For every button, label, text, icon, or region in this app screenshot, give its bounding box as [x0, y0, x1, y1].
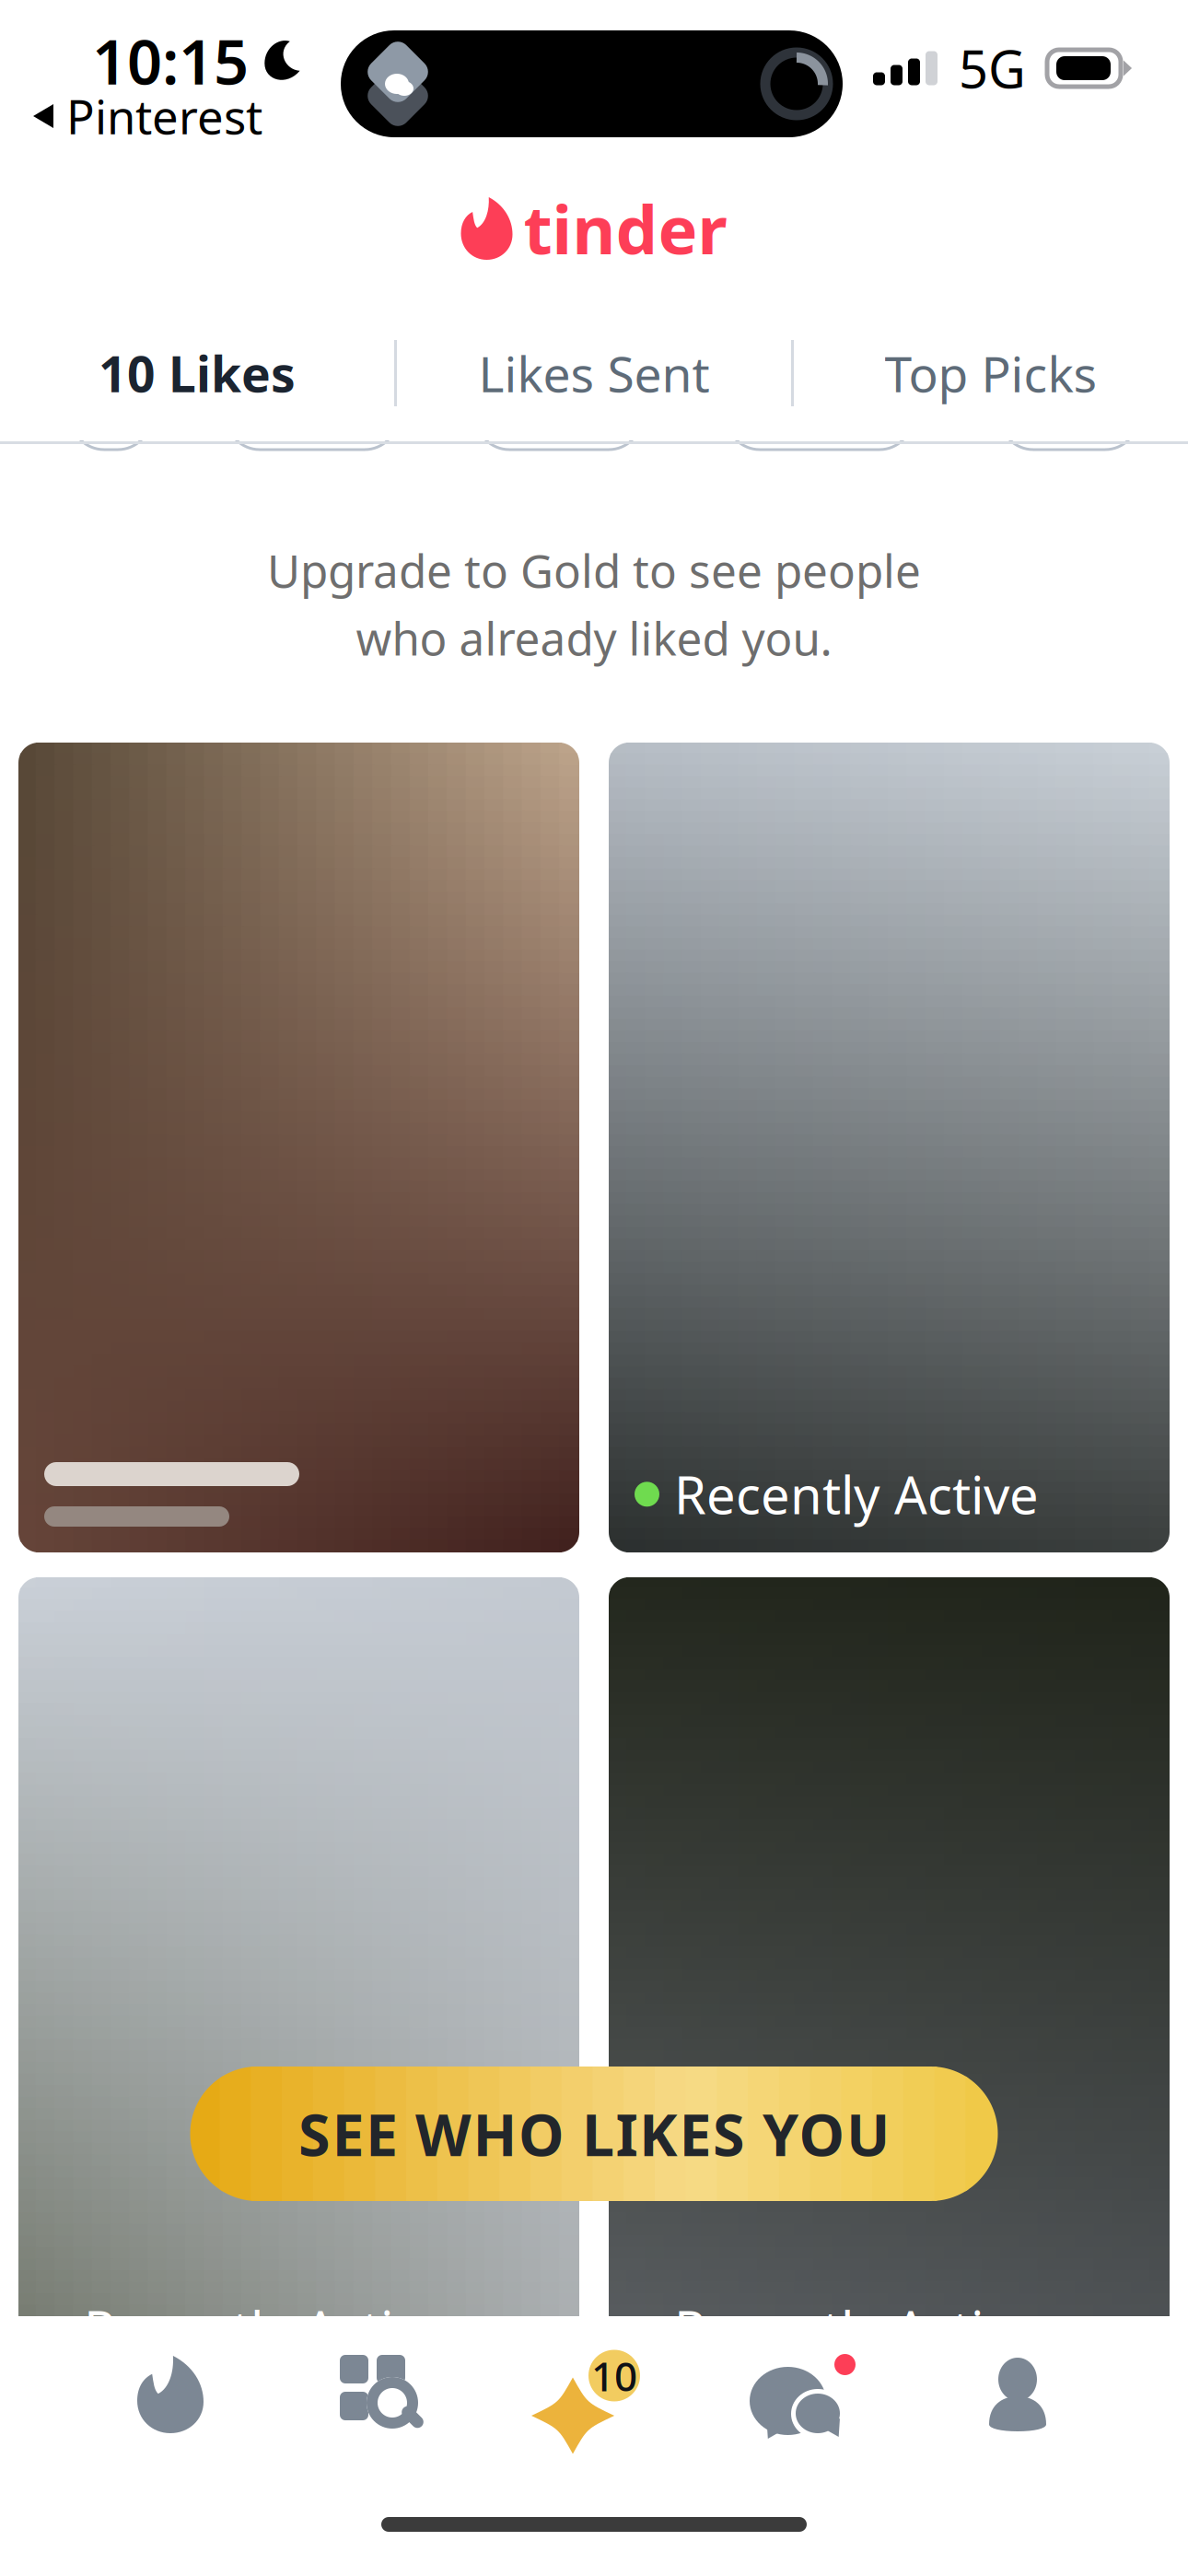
- button[interactable]: Messages: [700, 2316, 912, 2473]
- button[interactable]: Explore: [276, 2316, 488, 2473]
- staticText: 10: [591, 2349, 637, 2403]
- button[interactable]: 10 Likes: [0, 309, 394, 438]
- button[interactable]: Profile: [912, 2316, 1124, 2473]
- staticText: tinder: [524, 184, 727, 273]
- staticText: who already liked you.: [356, 608, 832, 668]
- button[interactable]: Top Picks: [794, 309, 1188, 438]
- staticText: Recently Active: [674, 2295, 1039, 2363]
- staticText: Recently Active: [84, 2295, 448, 2363]
- staticText: Pinterest: [66, 85, 262, 147]
- button[interactable]: Likes: [488, 2316, 700, 2473]
- staticText: Likes Sent: [478, 341, 710, 406]
- button[interactable]: Discover: [64, 2316, 276, 2473]
- staticText: Recently Active: [674, 1460, 1039, 1528]
- staticText: SEE WHO LIKES YOU: [298, 2095, 890, 2172]
- button[interactable]: Likes Sent: [397, 309, 791, 438]
- button[interactable]: SEE WHO LIKES YOU: [190, 2067, 998, 2201]
- staticText: 10 Likes: [99, 341, 296, 406]
- staticText: 5G: [959, 34, 1026, 102]
- staticText: Top Picks: [885, 341, 1097, 406]
- staticText: Upgrade to Gold to see people: [267, 540, 921, 600]
- staticText: 10:15: [92, 20, 249, 102]
